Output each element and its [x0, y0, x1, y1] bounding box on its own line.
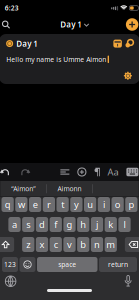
button[interactable]: Paragraph — [86, 168, 100, 176]
staticText: z — [26, 238, 30, 251]
button[interactable]: l — [118, 217, 131, 232]
button[interactable]: z — [22, 237, 34, 252]
staticText: p — [128, 198, 134, 211]
staticText: return — [108, 260, 128, 269]
staticText: u — [87, 198, 93, 211]
button[interactable]: u — [84, 197, 96, 212]
staticText: Aimonn — [57, 184, 81, 193]
staticText: 123 — [4, 260, 16, 269]
button[interactable]: a — [8, 217, 21, 232]
staticText: y — [74, 198, 79, 211]
staticText: Day 1 — [60, 19, 82, 30]
button[interactable]: y — [70, 197, 82, 212]
button[interactable]: Insert — [69, 167, 86, 176]
button[interactable]: Calendar — [113, 40, 122, 48]
button[interactable]: o — [111, 197, 124, 212]
staticText: o — [115, 198, 121, 211]
staticText: w — [18, 198, 25, 211]
button[interactable]: Formatting — [60, 168, 69, 175]
button[interactable]: Next keyboard — [0, 276, 16, 287]
button[interactable]: Profile — [125, 39, 135, 48]
button[interactable]: x — [36, 237, 48, 252]
button[interactable]: Emoji — [19, 257, 35, 272]
button[interactable]: space — [37, 257, 97, 272]
button[interactable]: Redo — [10, 168, 30, 176]
button[interactable]: Aimonn — [47, 181, 92, 196]
button[interactable]: n — [91, 237, 103, 252]
button[interactable]: Delete — [125, 237, 139, 252]
staticText: x — [39, 238, 44, 251]
button[interactable]: d — [36, 217, 48, 232]
staticText: s — [26, 218, 30, 231]
button[interactable]: k — [105, 217, 117, 232]
button[interactable]: q — [1, 197, 14, 212]
staticText: n — [94, 238, 100, 251]
button[interactable]: r — [43, 197, 55, 212]
button[interactable]: f — [50, 217, 62, 232]
button[interactable]: Undo — [0, 168, 10, 176]
button[interactable]: h — [77, 217, 89, 232]
button[interactable]: 123 — [2, 257, 18, 272]
staticText: v — [67, 238, 72, 251]
button[interactable]: b — [77, 237, 89, 252]
button[interactable]: p — [125, 197, 137, 212]
staticText: r — [47, 198, 51, 211]
button[interactable]: w — [15, 197, 27, 212]
staticText: a — [12, 218, 17, 231]
button[interactable]: Search — [0, 20, 10, 29]
button[interactable]: t — [56, 197, 69, 212]
button[interactable]: Entry settings — [124, 72, 135, 80]
staticText: j — [96, 218, 98, 231]
button[interactable]: g — [63, 217, 76, 232]
button[interactable]: s — [22, 217, 34, 232]
staticText: t — [61, 198, 64, 211]
staticText: 6:23 — [5, 4, 19, 12]
button[interactable]: Text style — [100, 166, 118, 178]
button[interactable]: c — [50, 237, 62, 252]
staticText: q — [5, 198, 11, 211]
staticText: Aa — [107, 166, 118, 178]
staticText: l — [123, 218, 125, 231]
staticText: f — [54, 218, 57, 231]
staticText: h — [80, 218, 86, 231]
button[interactable]: Day 1 journal menu — [55, 19, 84, 30]
staticText: b — [80, 238, 86, 251]
staticText: “Aimon” — [11, 184, 35, 193]
button[interactable]: return — [99, 257, 137, 272]
button[interactable]: j — [91, 217, 103, 232]
button[interactable]: e — [29, 197, 41, 212]
button[interactable]: v — [63, 237, 76, 252]
staticText: c — [54, 238, 58, 251]
button[interactable]: m — [105, 237, 117, 252]
staticText: d — [39, 218, 45, 231]
staticText: i — [103, 198, 105, 211]
staticText: Hello my name is Umme Aimon — [6, 55, 106, 64]
button[interactable]: Shift — [0, 237, 14, 252]
staticText: space — [58, 260, 76, 269]
staticText: m — [106, 238, 115, 251]
button[interactable]: i — [98, 197, 110, 212]
staticText: Day 1 — [16, 38, 38, 49]
staticText: g — [66, 218, 72, 231]
button[interactable]: Dictation — [124, 275, 139, 287]
button[interactable]: Dismiss keyboard — [118, 168, 139, 176]
staticText: k — [108, 218, 113, 231]
staticText: e — [33, 198, 38, 211]
button[interactable]: New Entry — [126, 18, 139, 31]
button[interactable]: Aimon — [0, 181, 46, 196]
